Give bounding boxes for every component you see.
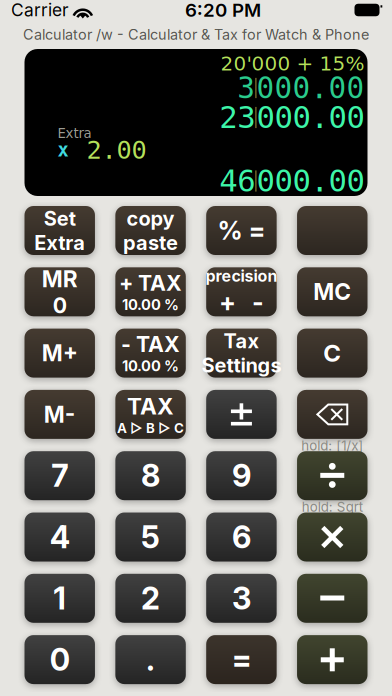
button[interactable] <box>297 574 367 623</box>
staticText: Settings <box>201 353 281 377</box>
staticText: = <box>231 641 251 678</box>
button[interactable]: Set <box>24 206 95 255</box>
button[interactable]: 7 <box>24 451 95 500</box>
staticText: - <box>252 287 264 317</box>
staticText: x <box>57 139 68 161</box>
button[interactable]: precision <box>206 267 277 316</box>
staticText: - TAX <box>121 331 180 357</box>
button[interactable] <box>297 635 367 684</box>
staticText: MR <box>42 265 78 293</box>
staticText: M+ <box>42 339 78 367</box>
staticText: Set <box>44 206 76 230</box>
button[interactable]: 9 <box>206 451 277 500</box>
staticText: Tax <box>223 329 259 353</box>
staticText: Extra <box>34 230 85 255</box>
staticText: Calculator /w - Calculator & Tax for Wat… <box>23 26 369 43</box>
staticText: 6:20 PM <box>185 0 261 21</box>
staticText: 20'000 + 15% <box>220 52 364 75</box>
button[interactable]: copy <box>115 206 186 255</box>
staticText: 5 <box>141 518 160 555</box>
staticText: 000.00 <box>256 100 364 135</box>
button[interactable] <box>297 451 367 500</box>
button[interactable]: 3 <box>206 574 277 623</box>
staticText: paste <box>123 230 178 255</box>
staticText: 4 <box>50 518 70 555</box>
staticText: C <box>323 339 341 368</box>
staticText: 23 <box>219 100 255 135</box>
button[interactable]: 0 <box>24 635 95 684</box>
staticText: A ▷ B ▷ C <box>117 420 184 436</box>
button[interactable]: 1 <box>24 574 95 623</box>
staticText: 1 <box>53 580 66 617</box>
button[interactable]: 8 <box>115 451 186 500</box>
staticText: Extra <box>57 126 91 141</box>
staticText: 3 <box>232 580 251 617</box>
button[interactable] <box>206 390 277 439</box>
staticText: 3 <box>237 71 255 105</box>
staticText: M- <box>44 401 76 428</box>
button[interactable]: 5 <box>115 512 186 561</box>
button[interactable] <box>297 206 367 255</box>
staticText: hold: [1/x] <box>301 438 363 454</box>
button[interactable]: M+ <box>24 329 95 378</box>
button[interactable]: 2 <box>115 574 186 623</box>
staticText: + <box>219 287 236 317</box>
button[interactable]: . <box>115 635 186 684</box>
staticText: copy <box>127 206 175 230</box>
button[interactable]: 4 <box>24 512 95 561</box>
staticText: 000.00 <box>256 71 364 105</box>
staticText: 2.00 <box>86 135 146 165</box>
staticText: 7 <box>51 457 68 494</box>
staticText: 000.00 <box>256 163 364 199</box>
button[interactable]: - TAX <box>115 329 186 378</box>
staticText: 10.00 % <box>122 357 179 375</box>
staticText: 8 <box>141 457 160 494</box>
staticText: . <box>146 641 155 678</box>
button[interactable]: = <box>206 635 277 684</box>
staticText: 0 <box>50 641 70 678</box>
staticText: precision <box>205 266 277 286</box>
staticText: hold: Sqrt <box>302 499 363 515</box>
button[interactable]: MR <box>24 267 95 316</box>
button[interactable]: % = <box>206 206 277 255</box>
staticText: 2 <box>141 580 160 617</box>
button[interactable] <box>297 390 367 439</box>
staticText: MC <box>313 278 351 305</box>
button[interactable]: M- <box>24 390 95 439</box>
staticText: 6 <box>232 518 251 555</box>
staticText: 0 <box>53 293 67 318</box>
staticText: 9 <box>232 457 251 494</box>
staticText: 10.00 % <box>122 296 179 313</box>
staticText: 46 <box>219 163 255 199</box>
button[interactable]: MC <box>297 267 367 316</box>
staticText: + TAX <box>119 270 182 296</box>
button[interactable]: TAX <box>115 390 186 439</box>
staticText: TAX <box>127 393 174 420</box>
staticText: % = <box>217 215 265 246</box>
button[interactable]: C <box>297 329 367 378</box>
staticText: Carrier <box>11 0 69 20</box>
button[interactable]: Tax <box>206 329 277 378</box>
button[interactable]: + TAX <box>115 267 186 316</box>
button[interactable]: 6 <box>206 512 277 561</box>
button[interactable] <box>297 512 367 561</box>
